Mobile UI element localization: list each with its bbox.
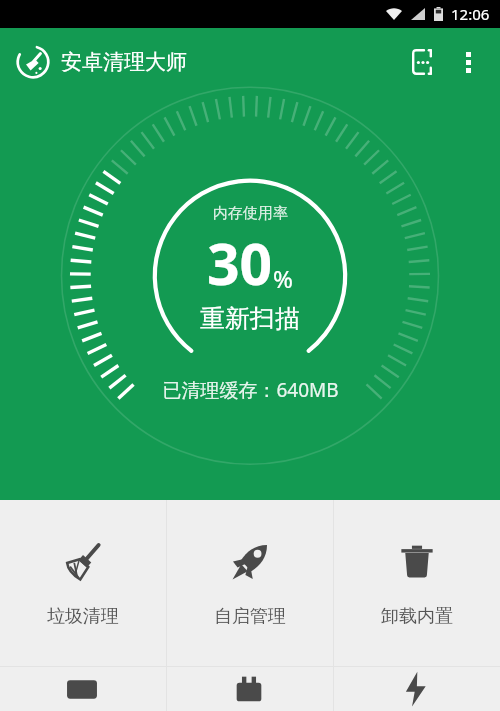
button[interactable]: 内存使用率 <box>200 204 300 334</box>
staticText: 重新扫描 <box>200 303 300 334</box>
button[interactable]: 进程管理 <box>167 667 333 711</box>
staticText: 12:06 <box>451 4 490 24</box>
button[interactable]: 省电优化 <box>334 667 500 711</box>
button[interactable]: 软件管理 <box>0 667 166 711</box>
staticText: 内存使用率 <box>213 204 288 223</box>
button[interactable]: One-tap boost <box>398 38 446 86</box>
staticText: 已清理缓存：640MB <box>162 377 339 403</box>
staticText: 安卓清理大师 <box>61 49 187 75</box>
staticText: % <box>273 262 293 295</box>
staticText: 自启管理 <box>214 605 286 628</box>
button[interactable]: 卸载内置 <box>334 500 500 666</box>
staticText: 垃圾清理 <box>47 605 119 628</box>
staticText: 卸载内置 <box>381 605 453 628</box>
staticText: 30 <box>207 224 273 302</box>
button[interactable]: More options <box>446 40 490 84</box>
button[interactable]: 垃圾清理 <box>0 500 166 666</box>
button[interactable]: 自启管理 <box>167 500 333 666</box>
